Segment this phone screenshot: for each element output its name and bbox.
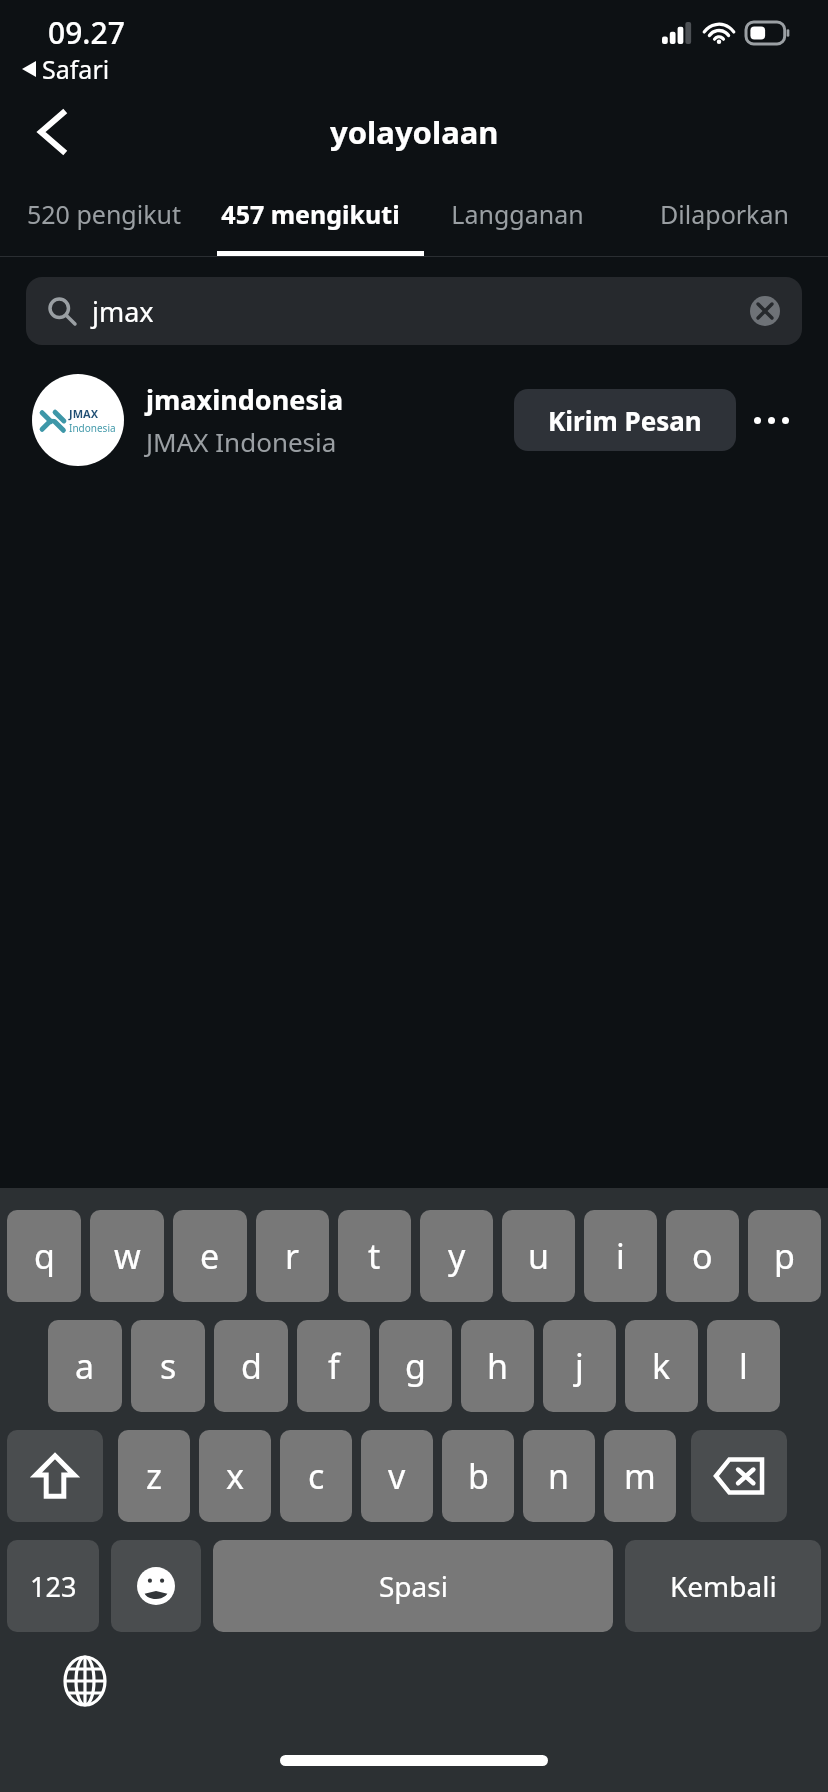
button[interactable]: Kirim Pesan xyxy=(514,389,736,451)
staticText: 09.27 xyxy=(48,12,125,53)
staticText: Indonesia xyxy=(69,421,116,435)
button[interactable]: Emoji xyxy=(111,1540,201,1632)
staticText: Kembali xyxy=(670,1567,777,1605)
button[interactable]: v xyxy=(361,1430,433,1522)
button[interactable]: i xyxy=(584,1210,657,1302)
button[interactable]: j xyxy=(543,1320,616,1412)
button[interactable]: e xyxy=(173,1210,247,1302)
staticText: t xyxy=(368,1233,381,1279)
staticText: m xyxy=(624,1453,656,1499)
button[interactable]: g xyxy=(379,1320,452,1412)
staticText: z xyxy=(146,1453,162,1499)
staticText: Kirim Pesan xyxy=(548,403,702,438)
staticText: r xyxy=(285,1233,300,1279)
button[interactable]: More options xyxy=(736,389,806,451)
button[interactable]: Back xyxy=(22,102,82,162)
staticText: jmax xyxy=(92,293,154,330)
button[interactable]: k xyxy=(625,1320,698,1412)
staticText: 123 xyxy=(30,1568,77,1605)
button[interactable]: r xyxy=(256,1210,329,1302)
button[interactable]: z xyxy=(118,1430,190,1522)
staticText: 520 pengikut xyxy=(27,197,181,231)
button[interactable]: w xyxy=(90,1210,164,1302)
button[interactable]: Spasi xyxy=(213,1540,613,1632)
staticText: JMAX Indonesia xyxy=(146,424,337,459)
button[interactable]: q xyxy=(7,1210,81,1302)
button[interactable]: 457 mengikuti xyxy=(207,172,414,256)
button[interactable]: jmax xyxy=(26,277,802,345)
button[interactable]: m xyxy=(604,1430,676,1522)
button[interactable]: o xyxy=(666,1210,739,1302)
button[interactable]: y xyxy=(420,1210,493,1302)
staticText: f xyxy=(328,1343,340,1389)
button[interactable]: h xyxy=(461,1320,534,1412)
staticText: w xyxy=(114,1233,141,1279)
staticText: u xyxy=(528,1233,550,1279)
button[interactable]: Change keyboard language xyxy=(58,1654,112,1708)
staticText: c xyxy=(308,1453,325,1499)
staticText: k xyxy=(652,1343,671,1389)
button[interactable]: Langganan xyxy=(414,172,621,256)
staticText: x xyxy=(226,1453,244,1499)
button[interactable]: t xyxy=(338,1210,411,1302)
staticText: j xyxy=(575,1343,584,1389)
button[interactable]: p xyxy=(748,1210,821,1302)
button[interactable]: l xyxy=(707,1320,780,1412)
staticText: y xyxy=(448,1233,466,1279)
staticText: p xyxy=(774,1233,795,1279)
staticText: g xyxy=(405,1343,426,1389)
staticText: i xyxy=(616,1233,625,1279)
button[interactable]: d xyxy=(214,1320,288,1412)
button[interactable]: Clear xyxy=(750,296,780,326)
button[interactable]: 520 pengikut xyxy=(0,172,207,256)
button[interactable]: JMAX xyxy=(0,365,828,475)
button[interactable]: n xyxy=(523,1430,595,1522)
button[interactable]: u xyxy=(502,1210,575,1302)
staticText: s xyxy=(160,1343,177,1389)
button[interactable]: Dilaporkan xyxy=(621,172,828,256)
staticText: yolayolaan xyxy=(330,111,499,153)
staticText: d xyxy=(241,1343,262,1389)
button[interactable]: Shift xyxy=(7,1430,103,1522)
button[interactable]: c xyxy=(280,1430,352,1522)
staticText: Langganan xyxy=(451,197,584,231)
staticText: Dilaporkan xyxy=(660,197,789,231)
staticText: v xyxy=(388,1453,406,1499)
staticText: jmaxindonesia xyxy=(146,381,344,418)
button[interactable]: x xyxy=(199,1430,271,1522)
staticText: l xyxy=(739,1343,748,1389)
staticText: e xyxy=(200,1233,220,1279)
button[interactable]: b xyxy=(442,1430,514,1522)
staticText: b xyxy=(468,1453,489,1499)
button[interactable]: s xyxy=(131,1320,205,1412)
button[interactable]: Kembali xyxy=(625,1540,821,1632)
staticText: Safari xyxy=(42,52,110,86)
button[interactable]: f xyxy=(297,1320,370,1412)
staticText: JMAX xyxy=(69,406,98,421)
button[interactable]: Backspace xyxy=(691,1430,787,1522)
staticText: 457 mengikuti xyxy=(221,197,400,231)
staticText: Spasi xyxy=(379,1567,448,1605)
button[interactable]: 123 xyxy=(7,1540,99,1632)
staticText: o xyxy=(692,1233,713,1279)
staticText: a xyxy=(75,1343,95,1389)
staticText: q xyxy=(34,1233,55,1279)
staticText: n xyxy=(548,1453,570,1499)
button[interactable]: a xyxy=(48,1320,122,1412)
staticText: h xyxy=(487,1343,509,1389)
